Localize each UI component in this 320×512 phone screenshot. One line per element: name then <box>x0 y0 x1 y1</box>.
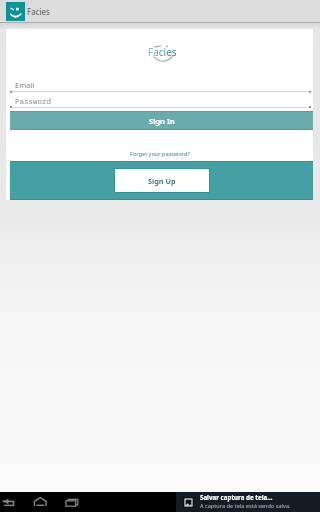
button[interactable]: Sign In <box>10 111 313 130</box>
button[interactable]: Back <box>0 492 32 512</box>
button[interactable]: Recent apps <box>64 492 96 512</box>
button[interactable]: Home <box>32 492 64 512</box>
staticText: Forget your password? <box>130 150 190 158</box>
staticText: Sign In <box>149 116 175 126</box>
staticText: Password <box>15 96 51 106</box>
staticText: Salvar captura de tela... <box>200 493 273 501</box>
staticText: Facies <box>148 45 177 59</box>
button[interactable]: Salvar captura de tela... <box>176 492 320 512</box>
staticText: Email <box>15 80 35 90</box>
button[interactable]: Sign Up <box>115 169 209 192</box>
button[interactable]: Forget your password? <box>6 148 313 159</box>
staticText: Sign Up <box>148 176 176 186</box>
staticText: A captura de tela está sendo salva. <box>200 502 291 510</box>
button[interactable]: Facies app icon <box>6 2 25 21</box>
staticText: Facies <box>27 6 50 17</box>
